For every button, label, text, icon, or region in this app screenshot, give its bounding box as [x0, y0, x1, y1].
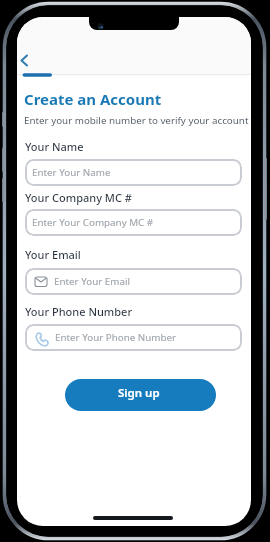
staticText: Enter Your Phone Number	[55, 331, 177, 344]
staticText: Enter Your Company MC #	[32, 216, 154, 229]
button[interactable]: Enter Your Company MC #	[25, 209, 242, 236]
button[interactable]: Enter Your Phone Number	[25, 324, 242, 351]
button[interactable]: Enter Your Email	[25, 268, 242, 295]
staticText: Your Name	[25, 139, 84, 154]
button[interactable]: Enter Your Name	[25, 159, 242, 186]
staticText: Enter Your Email	[54, 275, 130, 288]
button[interactable]: Sign up	[65, 379, 216, 411]
staticText: Your Email	[25, 247, 81, 262]
staticText: Enter your mobile number to verify your …	[24, 114, 249, 127]
button[interactable]	[17, 47, 39, 73]
staticText: Sign up	[118, 385, 160, 401]
staticText: Enter Your Name	[32, 166, 111, 179]
staticText: Create an Account	[24, 89, 162, 109]
staticText: Your Phone Number	[25, 304, 133, 319]
staticText: Your Company MC #	[25, 190, 132, 205]
